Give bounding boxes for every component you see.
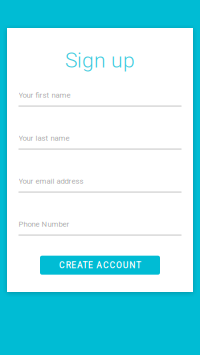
button[interactable]: Your email address [18, 177, 181, 193]
staticText: Your last name [18, 134, 69, 143]
button[interactable]: Phone Number [18, 220, 181, 236]
staticText: Phone Number [18, 220, 69, 229]
staticText: Your email address [18, 177, 83, 186]
staticText: Sign up [65, 48, 135, 73]
button[interactable]: Your first name [18, 91, 181, 107]
button[interactable]: CREATE ACCOUNT [40, 256, 160, 275]
staticText: Your first name [18, 91, 70, 100]
staticText: CREATE ACCOUNT [59, 260, 141, 270]
button[interactable]: Your last name [18, 134, 181, 150]
